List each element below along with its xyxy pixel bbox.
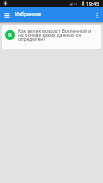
- staticText: Как велик возраст Вселенной и на основе …: [18, 28, 93, 43]
- button[interactable]: More options: [89, 8, 103, 22]
- button[interactable]: Open navigation menu: [0, 8, 14, 22]
- staticText: Избранное: [15, 11, 42, 18]
- button[interactable]: К: [2, 25, 101, 49]
- staticText: 19:45: [86, 0, 100, 7]
- staticText: К: [8, 31, 12, 39]
